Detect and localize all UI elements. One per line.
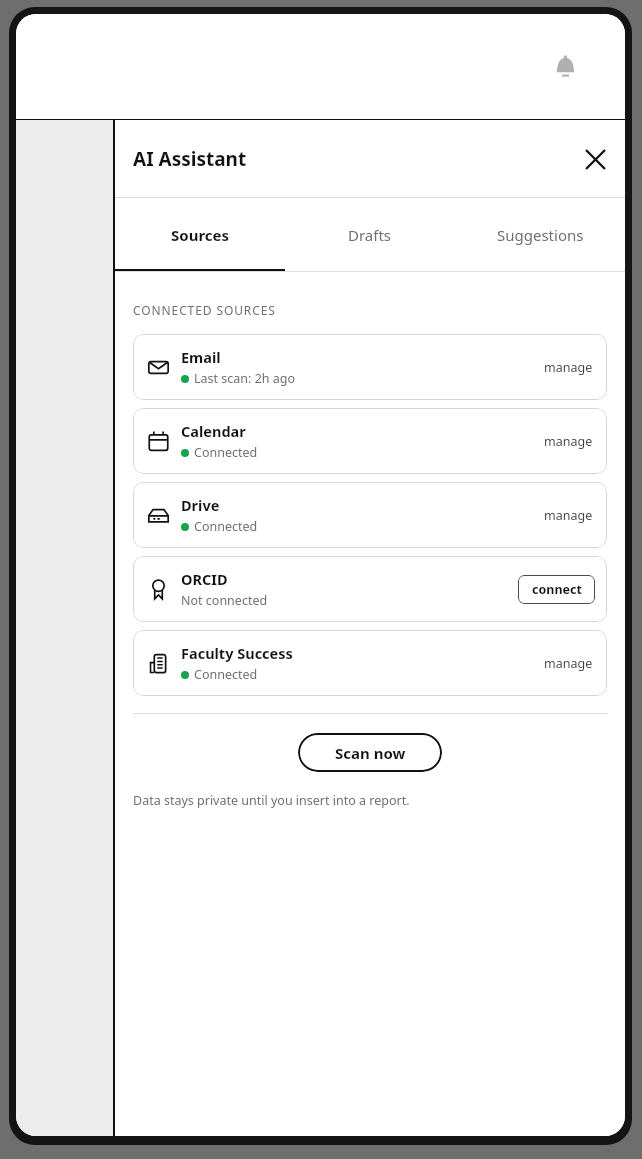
staticText: Scan now — [335, 743, 406, 763]
button[interactable]: Faculty Success — [133, 630, 607, 696]
staticText: manage — [544, 433, 593, 450]
button[interactable]: manage — [542, 426, 595, 457]
button[interactable]: Sources — [115, 198, 285, 272]
staticText: AI Assistant — [133, 146, 247, 172]
staticText: Connected — [194, 518, 258, 535]
staticText: Drafts — [348, 225, 392, 245]
staticText: manage — [544, 507, 593, 524]
staticText: manage — [544, 655, 593, 672]
button[interactable]: Calendar — [133, 408, 607, 474]
button[interactable]: manage — [542, 352, 595, 383]
staticText: Connected — [194, 666, 258, 683]
button[interactable]: Scan now — [298, 733, 442, 772]
button[interactable]: manage — [542, 500, 595, 531]
button[interactable]: Suggestions — [455, 198, 625, 272]
staticText: manage — [544, 359, 593, 376]
staticText: Not connected — [181, 592, 268, 609]
staticText: CONNECTED SOURCES — [133, 302, 276, 318]
staticText: Data stays private until you insert into… — [133, 792, 410, 809]
staticText: Connected — [194, 444, 258, 461]
button[interactable]: Email — [133, 334, 607, 400]
button[interactable]: Notifications — [548, 50, 582, 84]
staticText: Calendar — [181, 421, 246, 441]
staticText: ORCID — [181, 569, 228, 589]
button[interactable]: Close — [578, 142, 612, 176]
staticText: Last scan: 2h ago — [194, 370, 296, 387]
button[interactable]: Drive — [133, 482, 607, 548]
staticText: Drive — [181, 495, 220, 515]
staticText: Sources — [171, 225, 230, 245]
staticText: connect — [532, 581, 582, 598]
button[interactable]: ORCID — [133, 556, 607, 622]
button[interactable]: manage — [542, 648, 595, 679]
staticText: Suggestions — [497, 225, 584, 245]
staticText: Faculty Success — [181, 643, 293, 663]
button[interactable]: connect — [518, 575, 595, 604]
staticText: Email — [181, 347, 221, 367]
button[interactable]: Drafts — [285, 198, 455, 272]
